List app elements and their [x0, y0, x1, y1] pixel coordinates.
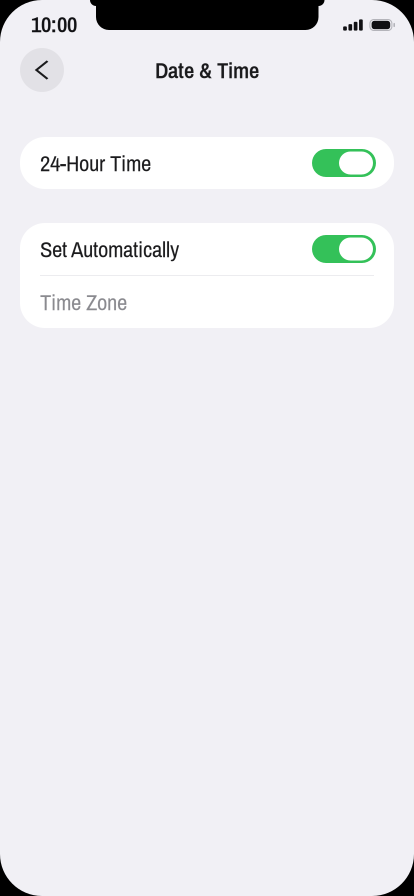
button[interactable]: Back: [20, 48, 64, 92]
button[interactable]: 24-Hour Time: [20, 137, 394, 189]
staticText: Time Zone: [40, 287, 127, 317]
staticText: Date & Time: [155, 55, 259, 85]
staticText: Set Automatically: [40, 234, 179, 264]
staticText: 10:00: [31, 9, 77, 39]
button[interactable]: Set Automatically: [20, 223, 394, 275]
button[interactable]: Time Zone: [20, 276, 394, 328]
staticText: 24-Hour Time: [40, 148, 151, 178]
